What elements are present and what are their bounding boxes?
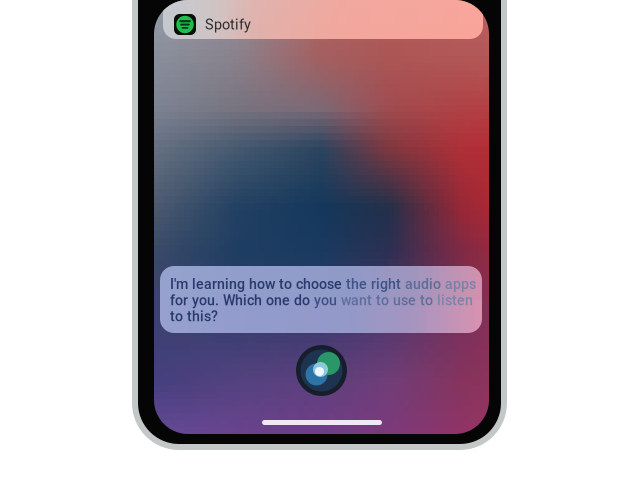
staticText: apps bbox=[445, 276, 476, 293]
staticText: for you. Which one do bbox=[170, 292, 314, 309]
button[interactable]: Home bbox=[256, 414, 388, 431]
staticText: you bbox=[314, 292, 341, 309]
button[interactable]: Spotify bbox=[163, 0, 483, 39]
staticText: audio bbox=[405, 276, 445, 293]
staticText: listen bbox=[437, 292, 473, 309]
staticText: the right bbox=[346, 276, 405, 293]
staticText: to this? bbox=[170, 308, 218, 325]
staticText: Spotify bbox=[205, 16, 251, 33]
staticText: want to use to bbox=[341, 292, 437, 309]
staticText: I'm learning how to choose bbox=[170, 276, 346, 293]
